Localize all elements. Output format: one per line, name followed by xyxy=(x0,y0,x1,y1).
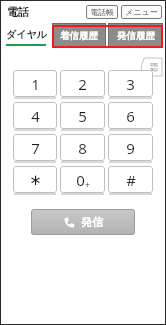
staticText: 4 xyxy=(31,106,40,126)
button[interactable]: 9 xyxy=(108,134,153,161)
staticText: 着信履歴 xyxy=(60,30,98,42)
staticText: 0 xyxy=(76,170,85,190)
staticText: メニュー xyxy=(125,7,158,17)
staticText: ダイヤル xyxy=(6,28,47,41)
button[interactable]: ダイヤル xyxy=(0,23,52,48)
button[interactable]: 電話帳 xyxy=(86,5,118,19)
staticText: 7 xyxy=(31,138,40,158)
button[interactable]: 国際電話 xyxy=(141,57,163,77)
staticText: 9 xyxy=(126,138,135,158)
staticText: ∗ xyxy=(29,171,42,188)
button[interactable]: # xyxy=(108,166,153,193)
button[interactable]: 1 xyxy=(13,70,57,97)
staticText: 8 xyxy=(78,138,87,158)
staticText: 国際 xyxy=(150,62,158,67)
staticText: 2 xyxy=(78,74,87,94)
staticText: 1 xyxy=(31,74,40,94)
button[interactable]: 発信履歴 xyxy=(108,23,163,48)
button[interactable]: 発信 xyxy=(31,209,135,235)
button[interactable]: 6 xyxy=(108,102,153,129)
button[interactable]: 3 xyxy=(108,70,153,97)
button[interactable]: メニュー xyxy=(121,5,162,19)
staticText: 電話 xyxy=(150,67,158,72)
staticText: 6 xyxy=(126,106,135,126)
staticText: 電話帳 xyxy=(90,7,114,17)
staticText: 電話 xyxy=(7,5,29,19)
button[interactable]: ∗ xyxy=(13,166,57,193)
staticText: # xyxy=(126,170,136,190)
staticText: 3 xyxy=(126,74,135,94)
staticText: 発信履歴 xyxy=(117,30,155,42)
button[interactable]: 2 xyxy=(60,70,105,97)
button[interactable]: 5 xyxy=(60,102,105,129)
button[interactable]: 0 xyxy=(60,166,105,193)
button[interactable]: 4 xyxy=(13,102,57,129)
button[interactable]: 7 xyxy=(13,134,57,161)
staticText: + xyxy=(85,179,90,190)
staticText: 発信 xyxy=(81,215,103,229)
staticText: 5 xyxy=(78,106,87,126)
button[interactable]: 着信履歴 xyxy=(52,23,106,48)
button[interactable]: 8 xyxy=(60,134,105,161)
